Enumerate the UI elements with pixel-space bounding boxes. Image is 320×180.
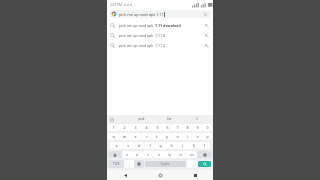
- button[interactable]: I: [183, 115, 211, 123]
- button[interactable]: b: [164, 151, 175, 158]
- button[interactable]: 9: [192, 124, 202, 131]
- button[interactable]: q: [108, 133, 119, 140]
- button[interactable]: pick me up mod apk: [107, 40, 213, 50]
- staticText: r: [146, 134, 148, 139]
- button[interactable]: 7: [172, 124, 182, 131]
- staticText: z: [126, 152, 128, 157]
- button[interactable]: w: [119, 133, 130, 140]
- staticText: ,: [129, 162, 130, 167]
- button[interactable]: v: [153, 151, 164, 158]
- button[interactable]: pick me up mod apk: [107, 20, 213, 30]
- staticText: i: [187, 134, 188, 139]
- staticText: pick: [138, 117, 145, 121]
- staticText: 4: [145, 125, 148, 130]
- button[interactable]: Space: [145, 161, 186, 167]
- button[interactable]: Search: [198, 161, 211, 167]
- button[interactable]: Home: [143, 170, 178, 180]
- staticText: o: [196, 134, 199, 139]
- button[interactable]: m: [186, 151, 197, 158]
- staticText: j: [182, 143, 183, 148]
- button[interactable]: 6: [162, 124, 172, 131]
- staticText: 5: [156, 125, 159, 130]
- button[interactable]: 0: [202, 124, 212, 131]
- staticText: pick me up mod apk: [119, 23, 155, 28]
- staticText: d: [137, 143, 140, 148]
- button[interactable]: o: [192, 133, 202, 140]
- button[interactable]: p: [202, 133, 212, 140]
- staticText: b: [168, 152, 171, 157]
- button[interactable]: pick: [127, 115, 155, 123]
- staticText: pick me up mod apk: [119, 33, 155, 38]
- staticText: 1.11.2: [155, 43, 166, 48]
- button[interactable]: Voice: [109, 117, 114, 122]
- button[interactable]: Back: [107, 170, 143, 180]
- button[interactable]: r: [141, 133, 152, 140]
- button[interactable]: ,: [124, 160, 134, 168]
- staticText: w: [123, 134, 126, 139]
- button[interactable]: 8: [182, 124, 192, 131]
- button[interactable]: l: [199, 142, 210, 149]
- button[interactable]: Key: [108, 151, 122, 158]
- staticText: pick me up mod apk: [119, 43, 155, 48]
- staticText: s: [127, 143, 129, 148]
- staticText: I: [196, 117, 198, 121]
- button[interactable]: a: [110, 142, 122, 149]
- staticText: f: [149, 143, 151, 148]
- button[interactable]: x: [132, 151, 142, 158]
- button[interactable]: for: [155, 115, 183, 123]
- staticText: 9: [196, 125, 199, 130]
- staticText: h: [170, 143, 173, 148]
- button[interactable]: Clear: [202, 11, 209, 18]
- button[interactable]: y: [162, 133, 172, 140]
- button[interactable]: j: [177, 142, 188, 149]
- button[interactable]: g: [155, 142, 166, 149]
- staticText: 1: [112, 125, 115, 130]
- button[interactable]: 5: [152, 124, 162, 131]
- button[interactable]: 2: [119, 124, 130, 131]
- button[interactable]: n: [175, 151, 186, 158]
- button[interactable]: Key: [108, 160, 124, 168]
- button[interactable]: Recents: [178, 170, 213, 180]
- button[interactable]: Insert suggestion: [203, 42, 210, 49]
- button[interactable]: f: [144, 142, 155, 149]
- button[interactable]: Key: [197, 151, 212, 158]
- staticText: English: [161, 162, 170, 166]
- staticText: 2: [123, 125, 126, 130]
- button[interactable]: i: [182, 133, 192, 140]
- staticText: 1.11 download: [155, 23, 181, 28]
- staticText: 3: [134, 125, 137, 130]
- button[interactable]: t: [152, 133, 162, 140]
- staticText: for: [167, 117, 172, 121]
- staticText: n: [179, 152, 182, 157]
- button[interactable]: k: [188, 142, 199, 149]
- button[interactable]: pick me up mod apk 1.11: [109, 10, 211, 18]
- button[interactable]: z: [122, 151, 132, 158]
- staticText: y: [166, 134, 168, 139]
- button[interactable]: 1: [108, 124, 119, 131]
- staticText: ?123: [113, 162, 120, 166]
- button[interactable]: d: [133, 142, 144, 149]
- button[interactable]: e: [130, 133, 141, 140]
- staticText: 1.11.0: [155, 33, 166, 38]
- staticText: a: [115, 143, 118, 148]
- staticText: k: [193, 143, 195, 148]
- button[interactable]: h: [166, 142, 177, 149]
- button[interactable]: c: [142, 151, 153, 158]
- staticText: e: [134, 134, 137, 139]
- button[interactable]: 4: [141, 124, 152, 131]
- staticText: 8: [186, 125, 189, 130]
- button[interactable]: Insert suggestion: [203, 22, 210, 29]
- staticText: 6: [166, 125, 169, 130]
- button[interactable]: .: [187, 160, 197, 168]
- button[interactable]: Key: [134, 160, 144, 168]
- staticText: 4:47 PM: [110, 3, 122, 7]
- staticText: 0: [206, 125, 209, 130]
- staticText: x: [136, 152, 138, 157]
- staticText: u: [176, 134, 179, 139]
- button[interactable]: 3: [130, 124, 141, 131]
- button[interactable]: s: [122, 142, 133, 149]
- staticText: 7: [176, 125, 179, 130]
- button[interactable]: pick me up mod apk: [107, 30, 213, 40]
- button[interactable]: Insert suggestion: [203, 32, 210, 39]
- button[interactable]: u: [172, 133, 182, 140]
